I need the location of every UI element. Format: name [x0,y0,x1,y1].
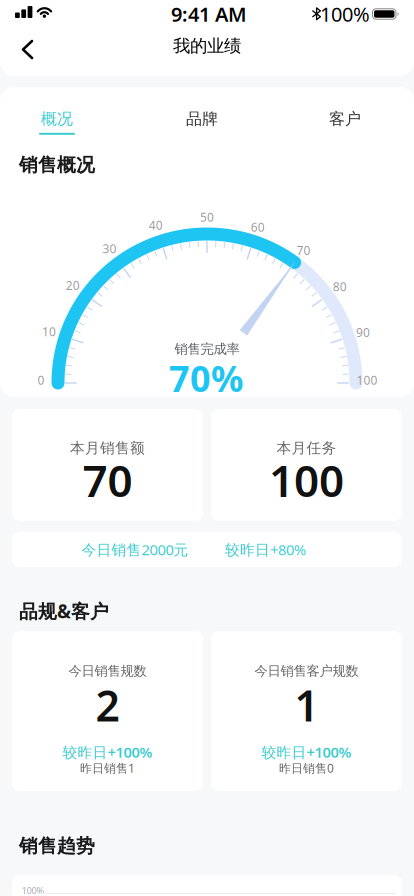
staticText: 100 [356,372,377,388]
staticText: 2 [95,677,119,733]
staticText: 80 [333,279,347,294]
staticText: 70 [82,451,132,509]
button[interactable]: 客户 [329,103,361,135]
staticText: 今日销售2000元 [81,540,188,559]
staticText: 销售趋势 [19,834,95,857]
staticText: 昨日销售1 [80,760,135,776]
staticText: 销售完成率 [174,341,239,357]
staticText: 今日销售客户规数 [254,663,358,679]
staticText: 100% [320,1,370,27]
staticText: 较昨日+80% [225,540,306,559]
staticText: 100 [269,451,344,509]
staticText: 1 [294,677,318,733]
button[interactable]: 本月销售额 [12,409,203,521]
staticText: 本月任务 [276,439,336,457]
staticText: 今日销售规数 [68,663,146,679]
button[interactable]: 今日销售客户规数 [211,631,402,791]
staticText: 本月销售额 [70,439,145,457]
staticText: 品规&客户 [19,599,109,623]
staticText: 昨日销售0 [279,760,334,776]
staticText: 较昨日+100% [62,742,152,762]
staticText: 30 [102,241,116,257]
staticText: 70% [169,354,243,402]
button[interactable]: 今日销售2000元 [12,532,402,567]
staticText: 50 [200,209,214,225]
staticText: 我的业绩 [173,35,241,57]
staticText: 销售概况 [19,153,95,176]
staticText: 概况 [41,109,73,129]
staticText: 40 [149,217,163,233]
staticText: 70 [296,242,310,258]
staticText: 60 [251,219,265,235]
button[interactable]: 本月任务 [211,409,402,521]
button[interactable]: Back [16,38,39,60]
staticText: 9:41 AM [171,1,247,27]
staticText: 10 [42,324,56,340]
staticText: 品牌 [186,109,218,129]
staticText: 客户 [329,109,361,129]
staticText: 90 [356,324,370,340]
button[interactable]: 概况 [39,109,75,135]
button[interactable]: 今日销售规数 [12,631,203,791]
button[interactable]: 品牌 [186,103,218,135]
staticText: 较昨日+100% [261,742,351,762]
staticText: 0 [37,372,44,388]
staticText: 100% [21,884,44,896]
staticText: 20 [66,277,80,293]
